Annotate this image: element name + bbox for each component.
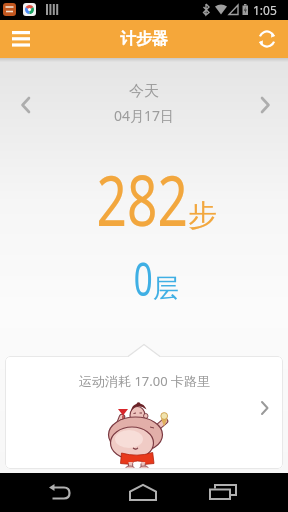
staticText: 今天 [129, 82, 159, 101]
staticText: 1:05 [253, 2, 277, 18]
button[interactable] [121, 473, 165, 512]
staticText: 0 [134, 247, 153, 310]
button[interactable] [38, 473, 82, 512]
staticText: 04月17日 [114, 106, 175, 125]
staticText: 282 [96, 151, 188, 246]
button[interactable] [252, 93, 278, 117]
button[interactable] [0, 20, 42, 58]
staticText: 层 [153, 272, 179, 305]
button[interactable]: 运动消耗 17.00 卡路里 [5, 356, 283, 469]
button[interactable] [200, 473, 244, 512]
staticText: 计步器 [120, 29, 168, 49]
button[interactable] [12, 93, 38, 117]
button[interactable] [246, 20, 288, 58]
staticText: 运动消耗 17.00 卡路里 [79, 372, 210, 390]
staticText: 步 [188, 197, 217, 234]
